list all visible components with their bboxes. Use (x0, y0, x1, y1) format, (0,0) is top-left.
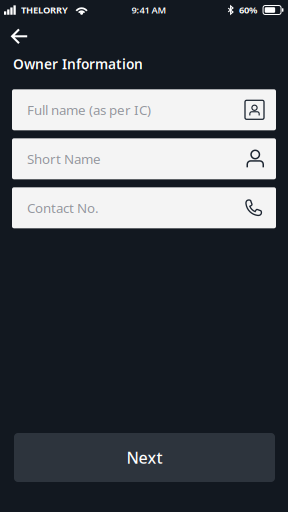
staticText: Full name (as per IC) (27, 101, 151, 119)
staticText: 9:41 AM (131, 4, 166, 16)
button[interactable]: Contact No. (12, 187, 276, 228)
staticText: Contact No. (27, 199, 99, 217)
staticText: THELORRY (21, 4, 68, 16)
staticText: Owner Information (13, 55, 143, 73)
staticText: Next (126, 447, 162, 468)
staticText: 60% (239, 4, 257, 16)
button[interactable]: Next (14, 433, 275, 482)
button[interactable]: Short Name (12, 138, 276, 179)
button[interactable]: Full name (as per IC) (12, 89, 276, 130)
button[interactable]: Back (0, 20, 42, 52)
staticText: Short Name (27, 150, 101, 168)
